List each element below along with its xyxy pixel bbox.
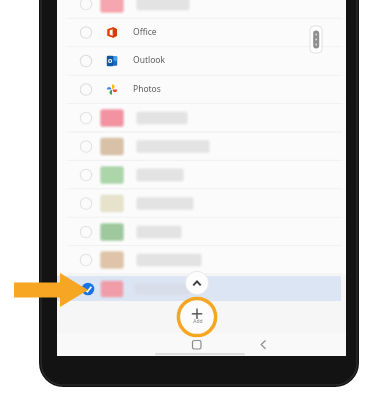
button[interactable] bbox=[57, 47, 346, 75]
button[interactable] bbox=[57, 104, 346, 132]
staticText: Photos bbox=[133, 83, 161, 95]
staticText: Office bbox=[133, 26, 157, 38]
button[interactable] bbox=[57, 245, 346, 273]
staticText: Add bbox=[189, 318, 207, 326]
button[interactable]: Back bbox=[254, 336, 273, 354]
button[interactable] bbox=[57, 18, 346, 46]
staticText: Outlook bbox=[133, 54, 165, 66]
button[interactable] bbox=[57, 132, 346, 160]
button[interactable] bbox=[57, 75, 346, 103]
button[interactable] bbox=[57, 189, 346, 217]
button[interactable] bbox=[57, 160, 346, 188]
button[interactable]: Home bbox=[187, 336, 206, 354]
button[interactable] bbox=[57, 217, 346, 245]
button[interactable]: Add bbox=[177, 297, 217, 337]
button[interactable] bbox=[57, 276, 342, 301]
button[interactable]: Collapse list bbox=[185, 271, 209, 295]
